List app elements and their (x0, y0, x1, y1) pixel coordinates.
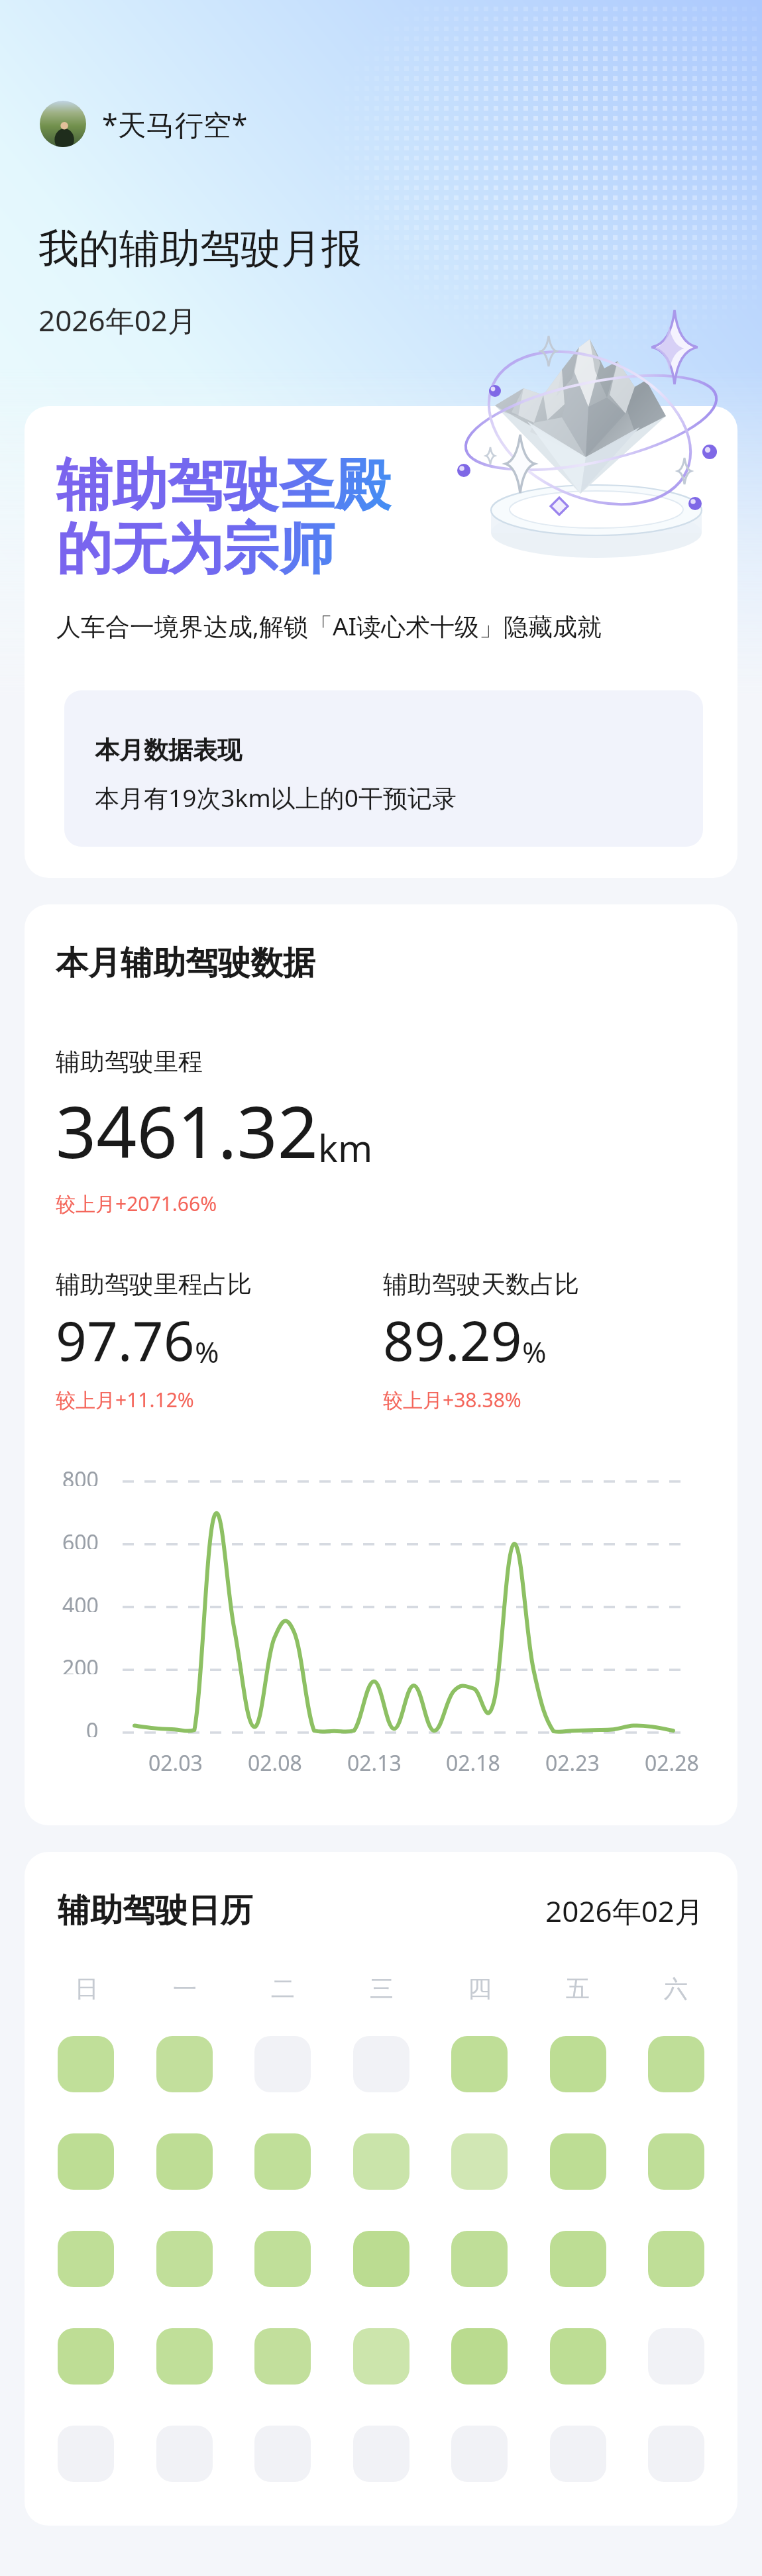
button[interactable] (353, 2133, 409, 2190)
staticText: 辅助驾驶里程占比 (56, 1269, 252, 1300)
button[interactable] (58, 2426, 114, 2482)
staticText: 较上月+2071.66% (56, 1190, 217, 1217)
button[interactable] (156, 2231, 213, 2287)
button[interactable] (156, 2133, 213, 2190)
button[interactable] (353, 2231, 409, 2287)
button[interactable] (353, 2328, 409, 2385)
button[interactable] (648, 2426, 704, 2482)
staticText: 600 (62, 1528, 99, 1549)
button[interactable]: *天马行空* (40, 101, 248, 147)
staticText: 89.29 (383, 1303, 522, 1377)
staticText: 三 (370, 1974, 394, 2004)
button[interactable] (58, 2231, 114, 2287)
button[interactable] (550, 2036, 606, 2092)
button[interactable] (254, 2133, 311, 2190)
staticText: 02.03 (148, 1748, 203, 1778)
staticText: 400 (62, 1591, 99, 1612)
button[interactable] (254, 2231, 311, 2287)
button[interactable] (254, 2426, 311, 2482)
staticText: 我的辅助驾驶月报 (38, 223, 362, 274)
staticText: 0 (86, 1716, 99, 1737)
button[interactable] (451, 2328, 508, 2385)
staticText: 800 (62, 1465, 99, 1486)
staticText: 二 (271, 1974, 295, 2004)
staticText: 本月有19次3km以上的0干预记录 (95, 780, 457, 814)
staticText: 六 (664, 1974, 688, 2004)
staticText: 2026年02月 (38, 300, 197, 340)
button[interactable] (156, 2426, 213, 2482)
button[interactable] (550, 2231, 606, 2287)
staticText: 人车合一境界达成,解锁「AI读心术十级」隐藏成就 (56, 609, 602, 643)
staticText: 辅助驾驶日历 (58, 1890, 252, 1931)
staticText: 200 (62, 1653, 99, 1674)
staticText: 辅助驾驶天数占比 (383, 1269, 579, 1300)
button[interactable] (451, 2426, 508, 2482)
button[interactable] (156, 2036, 213, 2092)
button[interactable] (156, 2328, 213, 2385)
staticText: 辅助驾驶圣殿 的无为宗师 (56, 451, 391, 584)
button[interactable] (550, 2426, 606, 2482)
staticText: 较上月+38.38% (383, 1386, 521, 1413)
button[interactable] (353, 2426, 409, 2482)
staticText: km (318, 1122, 373, 1173)
button[interactable] (451, 2036, 508, 2092)
staticText: 02.23 (545, 1748, 600, 1778)
staticText: 五 (566, 1974, 590, 2004)
button[interactable] (254, 2328, 311, 2385)
button[interactable] (353, 2036, 409, 2092)
button[interactable] (648, 2036, 704, 2092)
button[interactable] (58, 2036, 114, 2092)
staticText: 辅助驾驶里程 (56, 1046, 203, 1077)
staticText: 一 (173, 1974, 197, 2004)
staticText: 3461.32 (56, 1083, 318, 1179)
staticText: 四 (468, 1974, 492, 2004)
button[interactable] (451, 2231, 508, 2287)
staticText: % (522, 1332, 547, 1371)
button[interactable] (58, 2133, 114, 2190)
button[interactable] (451, 2133, 508, 2190)
staticText: 02.28 (645, 1748, 699, 1778)
staticText: % (195, 1332, 219, 1371)
staticText: 02.08 (248, 1748, 302, 1778)
staticText: 日 (75, 1974, 99, 2004)
staticText: 较上月+11.12% (56, 1386, 194, 1413)
button[interactable] (550, 2133, 606, 2190)
button[interactable]: 辅助驾驶圣殿 的无为宗师 (25, 406, 737, 878)
button[interactable] (648, 2133, 704, 2190)
staticText: *天马行空* (102, 105, 248, 144)
staticText: 本月数据表现 (95, 735, 242, 766)
staticText: 02.18 (446, 1748, 500, 1778)
button[interactable] (254, 2036, 311, 2092)
staticText: 97.76 (56, 1303, 195, 1377)
button[interactable] (648, 2328, 704, 2385)
button[interactable] (550, 2328, 606, 2385)
button[interactable] (58, 2328, 114, 2385)
staticText: 2026年02月 (545, 1891, 704, 1931)
staticText: 02.13 (347, 1748, 402, 1778)
staticText: 本月辅助驾驶数据 (56, 943, 315, 984)
button[interactable] (648, 2231, 704, 2287)
